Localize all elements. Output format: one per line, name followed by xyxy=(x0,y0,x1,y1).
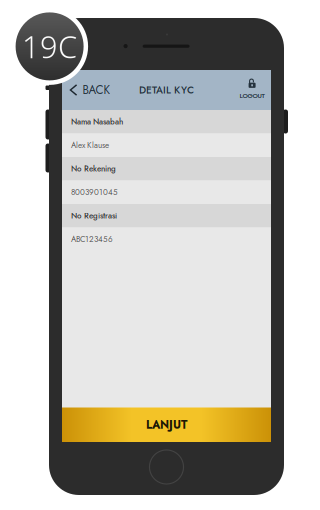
staticText: Alex Klause xyxy=(71,139,109,151)
staticText: ABC123456 xyxy=(71,233,113,245)
staticText: BACK xyxy=(82,82,110,98)
staticText: LOGOUT xyxy=(239,91,264,100)
staticText: 19C xyxy=(22,25,77,67)
staticText: 8003901045 xyxy=(71,186,118,198)
staticText: DETAIL KYC xyxy=(139,83,194,97)
staticText: Nama Nasabah xyxy=(71,116,123,128)
button[interactable]: BACK xyxy=(62,70,122,110)
staticText: LANJUT xyxy=(146,416,187,433)
staticText: No Rekening xyxy=(71,163,116,175)
staticText: No Registrasi xyxy=(71,210,117,222)
button[interactable]: LANJUT xyxy=(62,407,271,442)
button[interactable]: Logout xyxy=(233,70,271,110)
